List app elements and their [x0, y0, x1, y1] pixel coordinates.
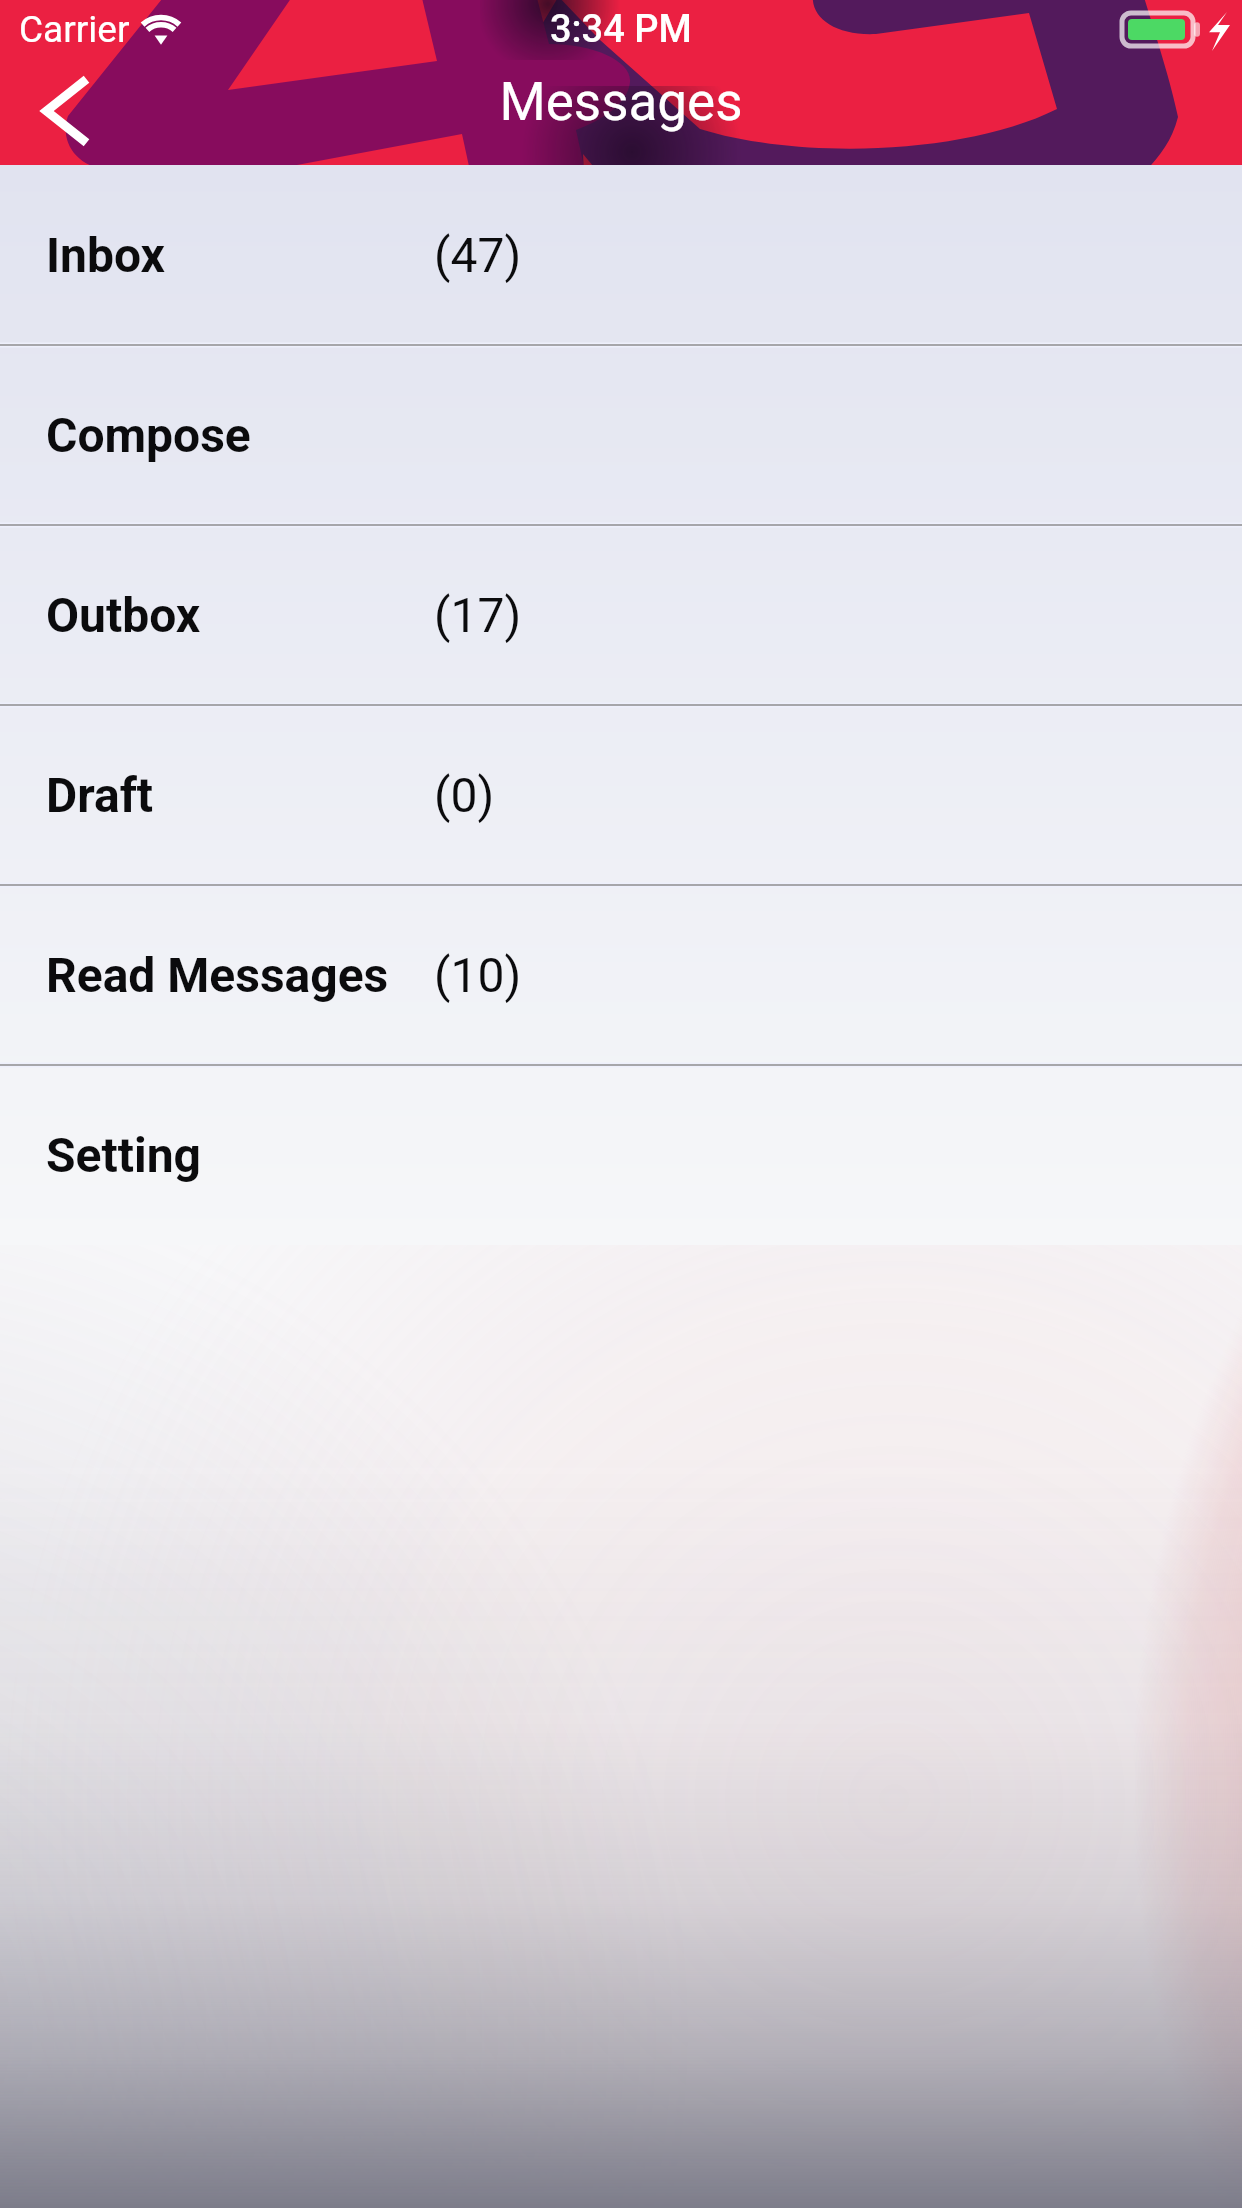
- staticText: (10): [434, 947, 522, 1003]
- button[interactable]: Draft: [0, 705, 1242, 885]
- staticText: Draft: [46, 767, 154, 823]
- staticText: Read Messages: [46, 947, 389, 1003]
- staticText: Inbox: [46, 227, 165, 283]
- staticText: Carrier: [19, 8, 130, 51]
- button[interactable]: Inbox: [0, 165, 1242, 345]
- button[interactable]: Compose: [0, 345, 1242, 525]
- staticText: 3:34 PM: [550, 7, 692, 52]
- staticText: (17): [434, 587, 522, 643]
- staticText: (47): [434, 227, 522, 283]
- button[interactable]: Outbox: [0, 525, 1242, 705]
- staticText: Setting: [46, 1127, 201, 1183]
- staticText: Outbox: [46, 587, 201, 643]
- staticText: (0): [434, 767, 495, 823]
- staticText: Messages: [499, 71, 743, 133]
- staticText: Compose: [46, 407, 251, 463]
- button[interactable]: Back: [18, 68, 104, 154]
- button[interactable]: Setting: [0, 1065, 1242, 1245]
- button[interactable]: Read Messages: [0, 885, 1242, 1065]
